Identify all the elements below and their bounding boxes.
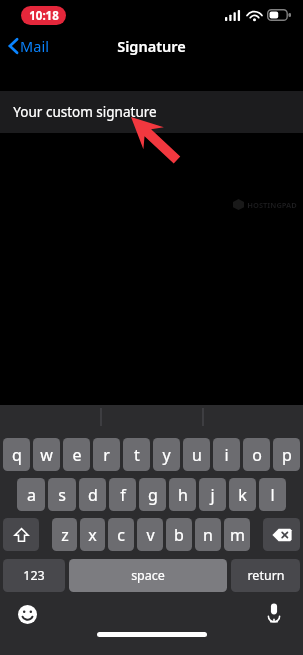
button[interactable]: c (108, 518, 134, 551)
staticText: k (238, 484, 247, 506)
staticText: u (192, 444, 202, 466)
staticText: 10:18 (29, 8, 59, 24)
button[interactable]: z (52, 518, 77, 551)
staticText: v (146, 524, 155, 546)
button[interactable]: v (137, 518, 163, 551)
staticText: h (178, 484, 188, 506)
staticText: w (40, 444, 53, 466)
button[interactable]: s (48, 478, 76, 511)
button[interactable]: b (166, 518, 192, 551)
staticText: l (270, 484, 275, 506)
staticText: HOSTINGPAD (247, 200, 297, 210)
button[interactable]: Shift (3, 518, 39, 551)
button[interactable]: j (199, 478, 226, 511)
staticText: t (134, 444, 140, 466)
button[interactable]: e (63, 438, 90, 471)
button[interactable]: Dictate (261, 600, 287, 626)
button[interactable]: h (169, 478, 196, 511)
button[interactable]: i (213, 438, 240, 471)
button[interactable]: g (139, 478, 166, 511)
button[interactable]: w (33, 438, 60, 471)
staticText: n (203, 524, 213, 546)
button[interactable]: d (79, 478, 106, 511)
button[interactable]: 123 (3, 559, 65, 592)
button[interactable]: x (80, 518, 105, 551)
staticText: e (72, 444, 82, 466)
button[interactable]: Emoji (14, 601, 40, 627)
staticText: z (61, 524, 69, 546)
button[interactable]: l (259, 478, 286, 511)
staticText: q (12, 444, 22, 466)
staticText: j (210, 484, 215, 506)
staticText: c (117, 524, 125, 546)
button[interactable]: t (123, 438, 150, 471)
staticText: g (148, 484, 158, 506)
button[interactable]: f (109, 478, 136, 511)
staticText: p (282, 444, 292, 466)
staticText: Your custom signature (13, 103, 157, 121)
staticText: Signature (117, 36, 186, 56)
button[interactable]: y (153, 438, 180, 471)
staticText: x (88, 524, 97, 546)
staticText: Mail (20, 36, 49, 56)
button[interactable]: m (224, 518, 250, 551)
staticText: r (103, 444, 110, 466)
staticText: 123 (23, 567, 45, 584)
button[interactable]: r (93, 438, 120, 471)
staticText: m (230, 524, 245, 546)
staticText: space (131, 567, 165, 584)
button[interactable]: Your custom signature (0, 91, 303, 133)
staticText: y (162, 444, 171, 466)
button[interactable]: o (243, 438, 270, 471)
staticText: i (224, 444, 229, 466)
button[interactable]: a (17, 478, 45, 511)
button[interactable]: space (69, 559, 227, 592)
staticText: s (58, 484, 66, 506)
button[interactable]: u (183, 438, 210, 471)
staticText: a (27, 484, 36, 506)
staticText: d (88, 484, 98, 506)
staticText: return (247, 567, 285, 584)
button[interactable]: Delete (263, 518, 300, 551)
staticText: o (252, 444, 262, 466)
button[interactable]: q (3, 438, 30, 471)
staticText: f (120, 484, 126, 506)
button[interactable]: p (273, 438, 300, 471)
button[interactable]: n (195, 518, 221, 551)
button[interactable]: return (231, 559, 300, 592)
button[interactable]: k (229, 478, 256, 511)
staticText: b (174, 524, 184, 546)
button[interactable]: Mail (0, 31, 59, 61)
